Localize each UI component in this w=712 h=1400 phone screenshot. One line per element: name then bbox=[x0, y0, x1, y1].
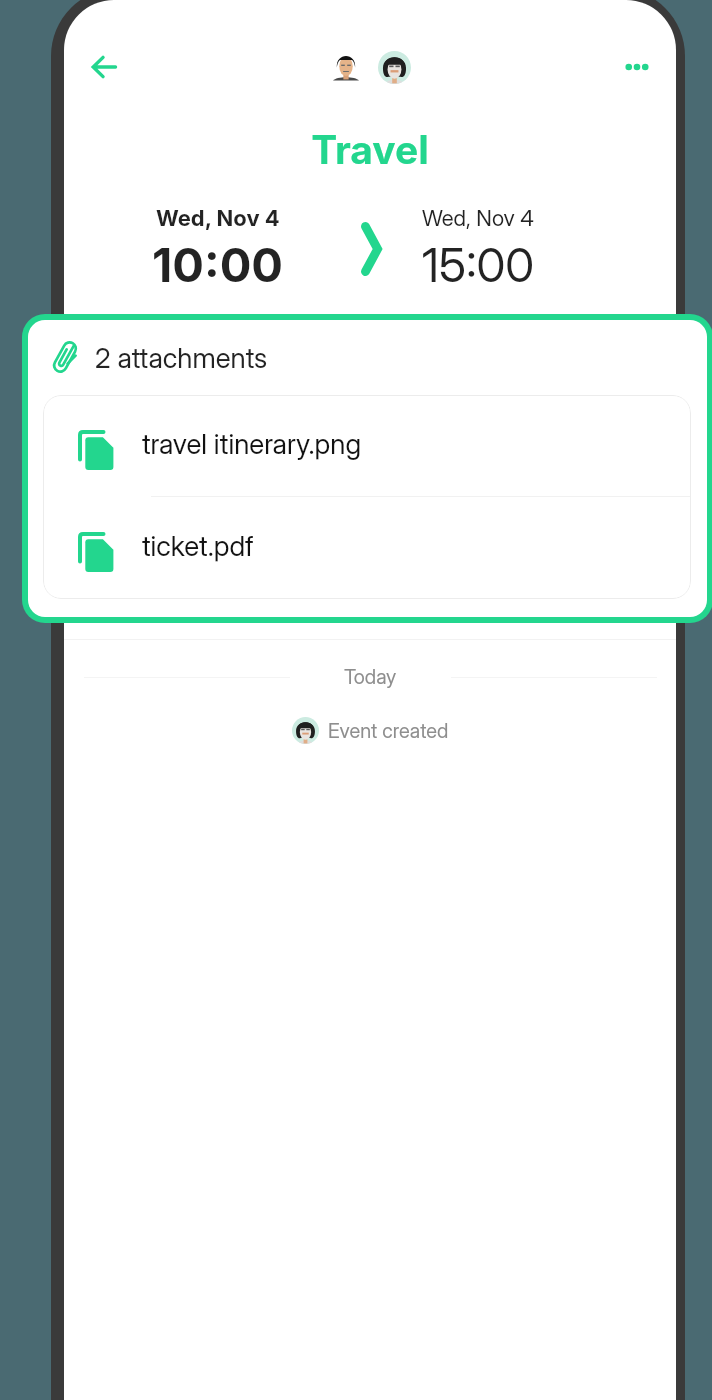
button[interactable]: ticket.pdf bbox=[43, 497, 691, 599]
button[interactable]: travel itinerary.png bbox=[43, 395, 691, 497]
staticText: 15:00 bbox=[422, 236, 535, 293]
button[interactable]: 2 attachments bbox=[28, 320, 707, 617]
staticText: Today bbox=[344, 665, 397, 689]
staticText: Travel bbox=[64, 126, 676, 173]
staticText: Wed, Nov 4 bbox=[422, 205, 534, 232]
staticText: 2 attachments bbox=[95, 341, 268, 375]
staticText: Wed, Nov 4 bbox=[156, 205, 280, 232]
staticText: Event created bbox=[328, 719, 449, 743]
staticText: travel itinerary.png bbox=[142, 427, 362, 461]
button[interactable]: More options bbox=[613, 43, 661, 91]
staticText: 10:00 bbox=[152, 236, 284, 293]
staticText: ticket.pdf bbox=[142, 529, 254, 563]
button[interactable]: Back bbox=[80, 43, 128, 91]
